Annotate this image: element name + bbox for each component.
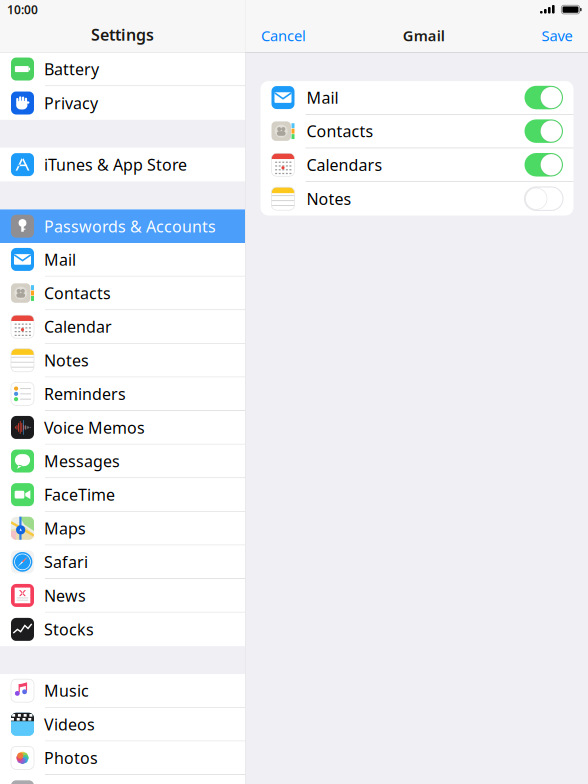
- button[interactable]: Maps: [0, 512, 245, 545]
- button[interactable]: Mail: [0, 243, 245, 277]
- staticText: Messages: [44, 450, 120, 472]
- staticText: 10:00: [7, 1, 38, 17]
- staticText: Contacts: [44, 282, 111, 304]
- button[interactable]: Notes: [260, 182, 573, 215]
- staticText: Contacts: [306, 120, 373, 142]
- button[interactable]: Contacts: [260, 115, 573, 148]
- staticText: Music: [44, 680, 89, 701]
- button[interactable]: Camera: [0, 775, 245, 784]
- staticText: Videos: [44, 714, 95, 735]
- button[interactable]: Calendar: [0, 310, 245, 344]
- button[interactable]: Safari: [0, 545, 245, 579]
- staticText: FaceTime: [44, 484, 115, 505]
- button[interactable]: Cancel: [245, 18, 306, 53]
- button[interactable]: Voice Memos: [0, 411, 245, 445]
- button[interactable]: Videos: [0, 708, 245, 741]
- button[interactable]: Mail: [260, 81, 573, 115]
- staticText: Mail: [306, 87, 338, 108]
- staticText: Calendar: [44, 316, 112, 337]
- button[interactable]: Contacts: [0, 277, 245, 310]
- staticText: Settings: [91, 24, 154, 45]
- button[interactable]: Save: [541, 18, 588, 53]
- staticText: Battery: [44, 58, 99, 80]
- staticText: Gmail: [403, 26, 445, 45]
- button[interactable]: Calendars: [260, 148, 573, 182]
- button[interactable]: Notes: [0, 344, 245, 377]
- button[interactable]: Passwords & Accounts: [0, 209, 245, 243]
- button[interactable]: Battery: [0, 53, 245, 86]
- button[interactable]: Stocks: [0, 613, 245, 646]
- button[interactable]: Privacy: [0, 86, 245, 120]
- staticText: Save: [541, 26, 572, 45]
- staticText: Notes: [306, 188, 351, 209]
- staticText: Photos: [44, 747, 98, 768]
- staticText: Maps: [44, 518, 86, 539]
- button[interactable]: Music: [0, 674, 245, 708]
- button[interactable]: Photos: [0, 741, 245, 775]
- staticText: Passwords & Accounts: [44, 216, 216, 237]
- button[interactable]: News: [0, 579, 245, 613]
- button[interactable]: Reminders: [0, 377, 245, 411]
- staticText: Calendars: [306, 154, 382, 175]
- staticText: Mail: [44, 249, 76, 270]
- staticText: Cancel: [261, 26, 306, 45]
- staticText: Notes: [44, 350, 89, 371]
- button[interactable]: FaceTime: [0, 478, 245, 512]
- staticText: Privacy: [44, 92, 98, 114]
- button[interactable]: Messages: [0, 445, 245, 478]
- staticText: Reminders: [44, 383, 126, 404]
- staticText: Safari: [44, 551, 88, 572]
- staticText: iTunes & App Store: [44, 154, 187, 175]
- staticText: News: [44, 585, 86, 606]
- staticText: Voice Memos: [44, 417, 145, 438]
- staticText: Stocks: [44, 619, 94, 640]
- button[interactable]: iTunes & App Store: [0, 148, 245, 181]
